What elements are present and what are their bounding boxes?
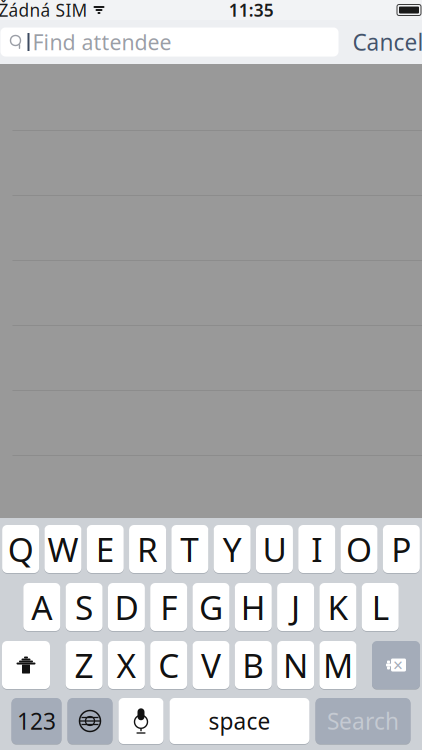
staticText: N [283, 643, 308, 687]
button[interactable]: Next keyboard [67, 697, 112, 745]
button[interactable]: B [235, 640, 272, 690]
staticText: A [31, 585, 52, 629]
button[interactable]: 123 [11, 697, 61, 745]
staticText: Search [327, 706, 399, 736]
staticText: K [327, 585, 348, 629]
button[interactable]: space [169, 697, 309, 745]
staticText: C [158, 643, 179, 687]
button[interactable]: W [44, 524, 81, 574]
button[interactable]: Cancel [346, 20, 422, 64]
button[interactable]: F [150, 582, 187, 632]
staticText: H [241, 585, 266, 629]
button[interactable]: X [108, 640, 145, 690]
staticText: G [199, 585, 223, 629]
staticText: V [201, 643, 221, 687]
button[interactable]: Delete [372, 640, 420, 690]
button[interactable]: C [150, 640, 187, 690]
staticText: space [208, 706, 270, 736]
staticText: S [75, 585, 93, 629]
button[interactable]: U [256, 524, 293, 574]
staticText: J [291, 585, 300, 629]
button[interactable]: J [277, 582, 314, 632]
button[interactable]: N [277, 640, 314, 690]
staticText: U [262, 527, 286, 571]
staticText: Find attendee [32, 28, 171, 56]
staticText: 11:35 [229, 0, 274, 21]
staticText: Z [75, 643, 94, 687]
staticText: F [160, 585, 177, 629]
button[interactable]: Y [214, 524, 251, 574]
staticText: M [323, 643, 353, 687]
staticText: P [391, 527, 411, 571]
button[interactable]: T [171, 524, 208, 574]
staticText: Y [223, 527, 242, 571]
staticText: T [180, 527, 199, 571]
button[interactable]: E [87, 524, 124, 574]
button[interactable]: Dictation [118, 697, 163, 745]
button[interactable]: V [192, 640, 229, 690]
staticText: W [47, 527, 78, 571]
button[interactable]: Find attendee [0, 27, 338, 56]
button[interactable]: O [341, 524, 378, 574]
button[interactable]: G [192, 582, 229, 632]
button[interactable]: R [129, 524, 166, 574]
button[interactable]: A [23, 582, 60, 632]
button[interactable]: H [235, 582, 272, 632]
staticText: B [242, 643, 264, 687]
staticText: D [114, 585, 138, 629]
staticText: X [116, 643, 136, 687]
staticText: Žádná SIM [0, 0, 87, 21]
button[interactable]: Z [66, 640, 103, 690]
staticText: Cancel [352, 27, 422, 57]
button[interactable]: Q [2, 524, 39, 574]
staticText: L [372, 585, 389, 629]
button[interactable]: Shift [2, 640, 50, 690]
staticText: O [346, 527, 372, 571]
staticText: R [137, 527, 158, 571]
button[interactable]: P [383, 524, 420, 574]
button[interactable]: L [362, 582, 399, 632]
button[interactable]: K [319, 582, 356, 632]
staticText: E [96, 527, 115, 571]
button[interactable]: M [319, 640, 356, 690]
button[interactable]: D [108, 582, 145, 632]
staticText: 123 [17, 706, 56, 736]
staticText: I [311, 527, 322, 571]
button[interactable]: S [66, 582, 103, 632]
button[interactable]: Search [315, 697, 410, 745]
staticText: Q [8, 527, 34, 571]
button[interactable]: I [298, 524, 335, 574]
staticText: × [393, 653, 403, 676]
